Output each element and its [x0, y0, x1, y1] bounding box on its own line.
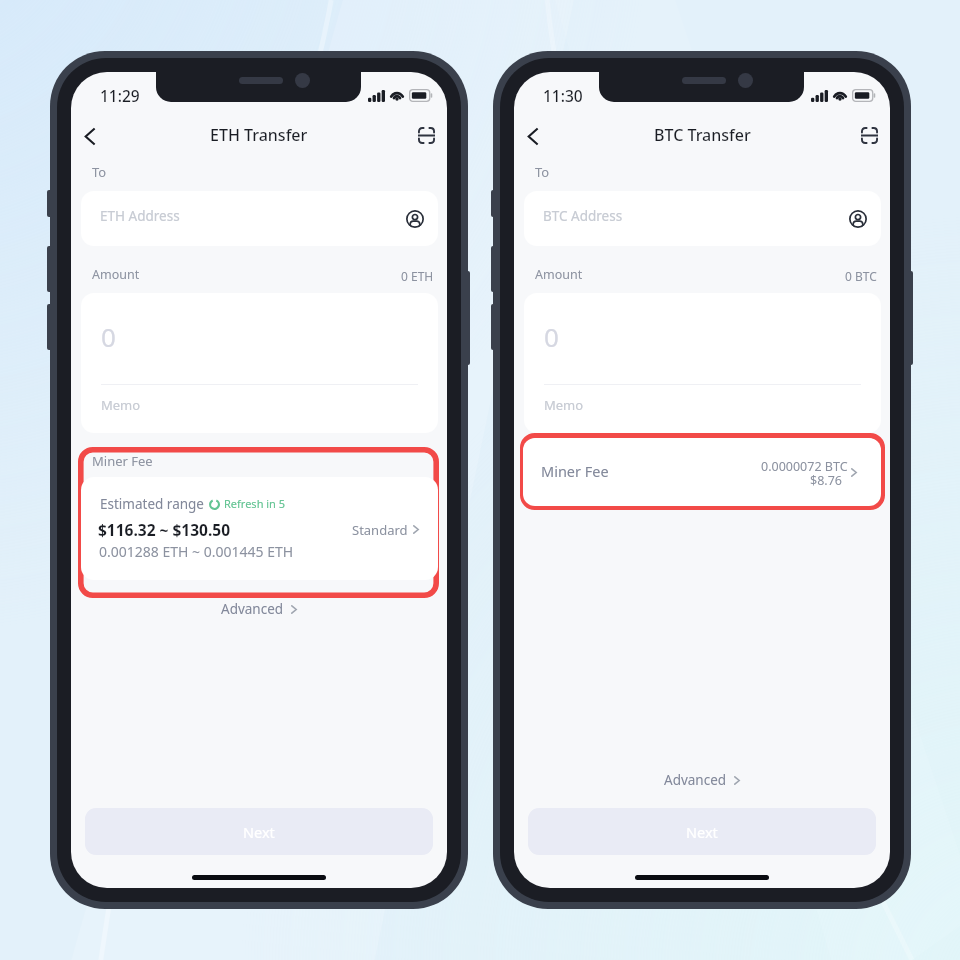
staticText: 0.001288 ETH ~ 0.001445 ETH [99, 542, 294, 561]
staticText: To [535, 163, 550, 181]
button[interactable]: ETH Address [81, 191, 438, 246]
staticText: Miner Fee [541, 461, 609, 481]
staticText: Amount [92, 266, 140, 283]
staticText: Miner Fee [92, 452, 153, 470]
staticText: Standard [352, 521, 408, 539]
staticText: Advanced [664, 771, 727, 789]
button[interactable]: BTC Address [524, 191, 881, 246]
button[interactable]: Estimated range [81, 477, 438, 580]
button[interactable]: Back [71, 114, 112, 158]
staticText: BTC Address [543, 207, 623, 225]
button[interactable]: Advanced [71, 598, 447, 620]
button[interactable]: Miner Fee [523, 438, 881, 506]
staticText: To [92, 163, 107, 181]
button[interactable]: Advanced [514, 769, 890, 791]
button[interactable]: Choose contact [401, 205, 429, 233]
staticText: 0 [101, 319, 116, 354]
staticText: Refresh in 5 [224, 496, 286, 511]
staticText: 0.0000072 BTC [761, 458, 848, 475]
staticText: $116.32 ~ $130.50 [98, 519, 231, 540]
staticText: Estimated range [100, 495, 204, 513]
button[interactable]: Choose contact [844, 205, 872, 233]
staticText: 11:29 [100, 85, 140, 106]
button[interactable]: Back [514, 114, 555, 158]
staticText: $8.76 [810, 472, 842, 489]
staticText: 0 [544, 319, 559, 354]
staticText: Memo [544, 396, 584, 414]
staticText: 0 BTC [845, 268, 877, 284]
button[interactable]: Memo [81, 385, 438, 433]
staticText: Next [243, 822, 275, 842]
button[interactable]: Scan QR code [411, 120, 441, 150]
staticText: ETH Address [100, 207, 180, 225]
staticText: Next [686, 822, 718, 842]
staticText: BTC Transfer [654, 124, 751, 146]
staticText: Amount [535, 266, 583, 283]
button[interactable]: Scan QR code [854, 120, 884, 150]
staticText: ETH Transfer [210, 124, 308, 146]
staticText: 0 ETH [401, 268, 434, 284]
button[interactable]: Memo [524, 385, 881, 433]
staticText: Memo [101, 396, 141, 414]
staticText: 11:30 [543, 85, 583, 106]
staticText: Advanced [221, 600, 284, 618]
